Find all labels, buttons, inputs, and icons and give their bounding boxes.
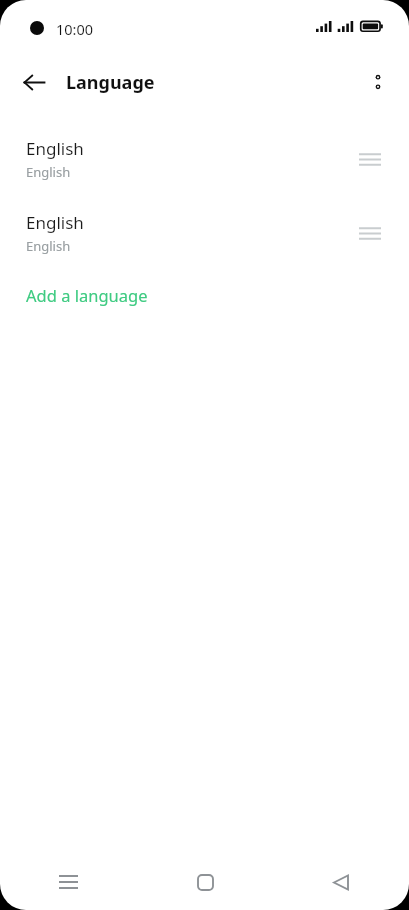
button[interactable]: Back [14,62,54,102]
staticText: Add a language [26,284,148,306]
button[interactable]: Reorder [349,212,391,254]
staticText: English [26,137,84,160]
button[interactable]: Recent apps [0,854,137,910]
staticText: 10:00 [56,19,94,39]
staticText: English [26,211,84,234]
button[interactable]: English [0,128,409,190]
button[interactable]: Back [273,854,409,910]
button[interactable]: More options [359,63,397,101]
staticText: English [26,163,71,181]
button[interactable]: Add a language [0,278,409,312]
button[interactable]: Home [137,854,273,910]
button[interactable]: English [0,202,409,264]
staticText: English [26,237,71,255]
button[interactable]: Reorder [349,138,391,180]
staticText: Language [66,70,155,95]
